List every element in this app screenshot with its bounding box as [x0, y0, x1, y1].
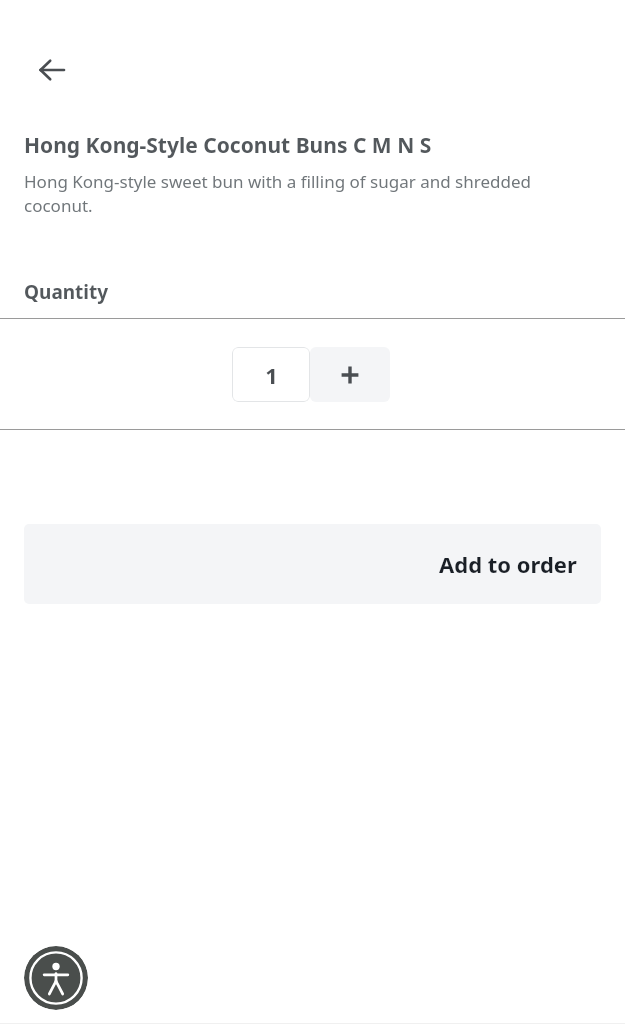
- staticText: Hong Kong-Style Coconut Buns C M N S: [24, 131, 432, 160]
- staticText: 1: [265, 360, 278, 390]
- staticText: Quantity: [24, 279, 109, 305]
- staticText: Add to order: [439, 549, 577, 579]
- button[interactable]: 1: [232, 347, 310, 402]
- button[interactable]: Increase quantity: [310, 347, 390, 402]
- button[interactable]: Accessibility options: [24, 946, 88, 1010]
- button[interactable]: Back: [26, 44, 78, 96]
- staticText: Hong Kong-style sweet bun with a filling…: [24, 170, 535, 217]
- button[interactable]: Add to order: [24, 524, 601, 604]
